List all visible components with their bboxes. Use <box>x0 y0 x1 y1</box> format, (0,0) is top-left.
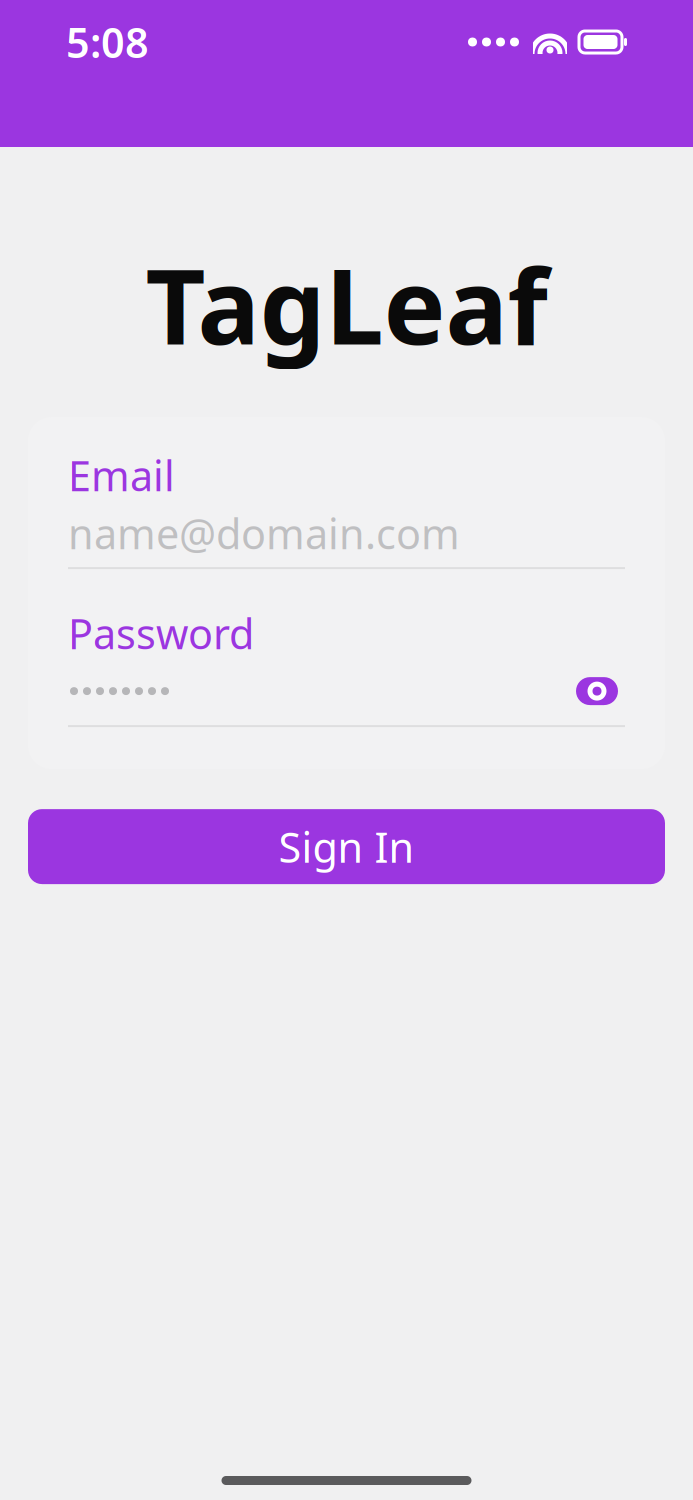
staticText: Email <box>68 448 175 503</box>
staticText: 5:08 <box>66 15 149 69</box>
button[interactable]: Show password <box>569 669 625 713</box>
staticText: Password <box>68 606 254 661</box>
staticText: Sign In <box>278 819 414 874</box>
staticText: TagLeaf <box>145 235 547 373</box>
staticText: name@domain.com <box>68 506 460 561</box>
button[interactable]: Sign In <box>28 809 665 884</box>
